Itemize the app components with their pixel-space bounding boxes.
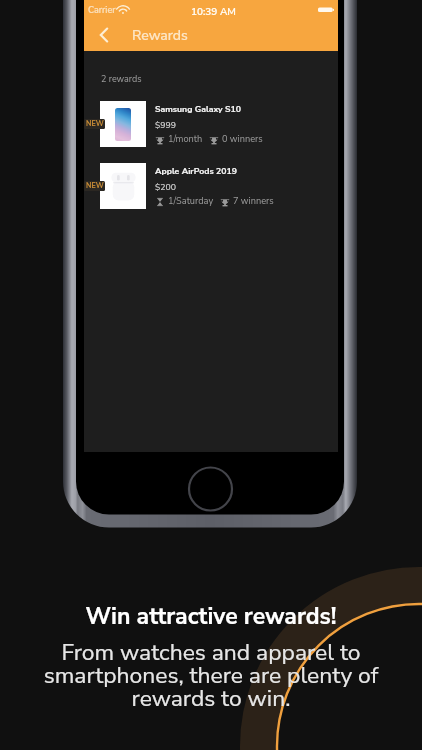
staticText: Apple AirPods 2019 <box>155 165 237 177</box>
staticText: NEW <box>86 181 104 191</box>
button[interactable]: NEW <box>84 163 338 209</box>
staticText: 2 rewards <box>101 73 142 85</box>
staticText: Samsung Galaxy S10 <box>155 103 241 115</box>
staticText: 7 winners <box>233 195 274 208</box>
staticText: $999 <box>155 119 176 131</box>
staticText: Carrier <box>88 4 116 16</box>
staticText: 10:39 AM <box>191 5 236 19</box>
staticText: NEW <box>86 119 104 129</box>
staticText: $200 <box>155 181 176 193</box>
staticText: 1/month <box>168 133 203 146</box>
staticText: Rewards <box>132 26 188 45</box>
staticText: 0 winners <box>222 133 263 146</box>
button[interactable]: Back <box>93 24 115 46</box>
button[interactable]: NEW <box>84 101 338 147</box>
staticText: From watches and apparel to smartphones,… <box>0 637 422 714</box>
staticText: 1/Saturday <box>168 195 214 208</box>
staticText: Win attractive rewards! <box>0 601 422 632</box>
